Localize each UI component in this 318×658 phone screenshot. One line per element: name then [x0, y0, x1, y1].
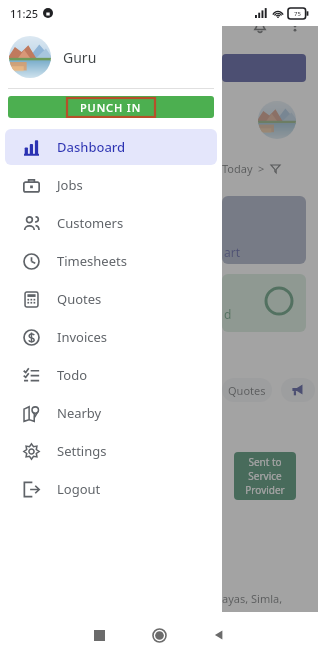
staticText: d: [224, 306, 232, 322]
button[interactable]: Customers: [5, 205, 217, 241]
button[interactable]: Logout: [5, 471, 217, 507]
staticText: Nearby: [57, 404, 102, 422]
button[interactable]: PUNCH IN: [8, 96, 214, 118]
button[interactable]: Dashboard: [5, 129, 217, 165]
staticText: Customers: [57, 214, 124, 232]
button[interactable]: Quotes: [5, 281, 217, 317]
staticText: Todo: [57, 366, 88, 384]
button[interactable]: Timesheets: [5, 243, 217, 279]
staticText: Guru: [63, 48, 97, 67]
staticText: Logout: [57, 480, 101, 498]
button[interactable]: Jobs: [5, 167, 217, 203]
button[interactable]: Todo: [5, 357, 217, 393]
button[interactable]: Guru: [0, 26, 222, 88]
staticText: Today: [222, 161, 253, 176]
staticText: Dashboard: [57, 138, 126, 156]
button[interactable]: Back: [189, 612, 249, 658]
staticText: Jobs: [57, 176, 83, 194]
staticText: Timesheets: [57, 252, 127, 270]
staticText: >: [258, 161, 265, 176]
button[interactable]: Recent apps: [69, 612, 129, 658]
staticText: Quotes: [228, 383, 266, 398]
button[interactable]: Invoices: [5, 319, 217, 355]
button[interactable]: Home: [129, 612, 189, 658]
button[interactable]: Settings: [5, 433, 217, 469]
staticText: Sent to Service Provider: [234, 455, 296, 497]
staticText: ayas, Simla,: [222, 591, 283, 606]
staticText: 11:25: [10, 6, 39, 21]
staticText: Settings: [57, 442, 107, 460]
staticText: Invoices: [57, 328, 108, 346]
staticText: art: [224, 244, 241, 260]
staticText: Quotes: [57, 290, 102, 308]
button[interactable]: Nearby: [5, 395, 217, 431]
staticText: PUNCH IN: [80, 100, 142, 115]
staticText: 75: [294, 10, 301, 18]
